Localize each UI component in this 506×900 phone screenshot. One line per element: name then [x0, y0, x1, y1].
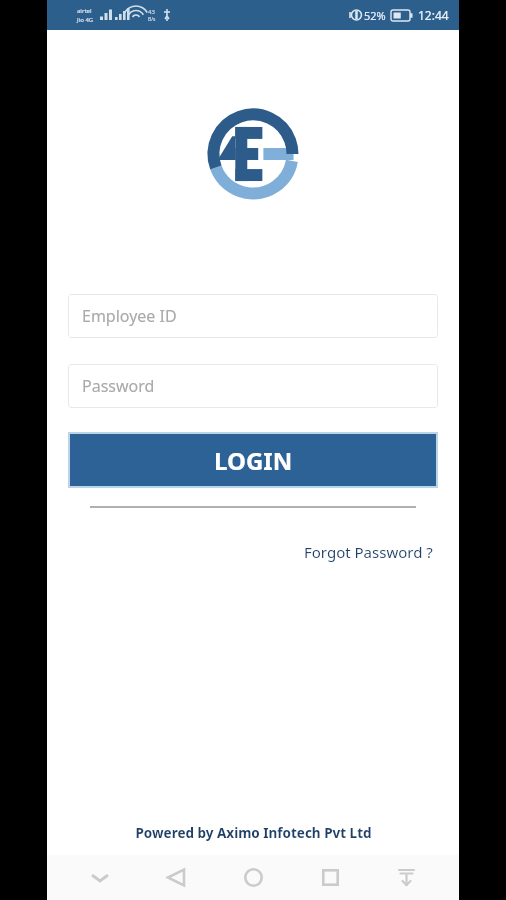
staticText: B/s: [148, 16, 156, 23]
staticText: 52%: [364, 8, 386, 23]
button[interactable]: LOGIN: [70, 434, 436, 486]
staticText: Forgot Password ?: [304, 542, 433, 562]
button[interactable]: Recent apps: [306, 855, 354, 900]
staticText: LOGIN: [214, 444, 293, 477]
button[interactable]: Back: [152, 855, 200, 900]
button[interactable]: Employee ID: [68, 294, 438, 338]
staticText: airtel: [77, 7, 92, 15]
button[interactable]: Hide navigation bar: [76, 855, 124, 900]
staticText: Powered by Aximo Infotech Pvt Ltd: [135, 824, 372, 842]
staticText: 12:44: [418, 7, 449, 23]
staticText: Password: [82, 375, 155, 397]
button[interactable]: Forgot Password ?: [300, 538, 437, 566]
staticText: Employee ID: [82, 305, 177, 327]
button[interactable]: Password: [68, 364, 438, 408]
staticText: 43: [148, 8, 155, 16]
staticText: Jio 4G: [77, 16, 94, 24]
button[interactable]: Home: [229, 855, 277, 900]
button[interactable]: Download: [382, 855, 430, 900]
